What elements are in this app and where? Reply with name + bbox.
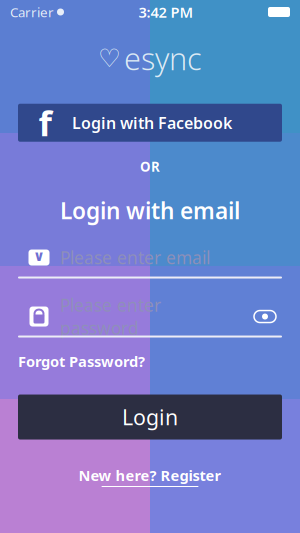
button[interactable]: Forgot Password? [18, 351, 145, 371]
staticText: Login with Facebook [72, 112, 232, 133]
staticText: OR [140, 158, 160, 175]
button[interactable]: Show password [248, 304, 282, 328]
staticText: ♡ [98, 44, 121, 73]
staticText: Forgot Password? [18, 351, 145, 371]
button[interactable]: Login [18, 394, 282, 439]
staticText: Login [122, 403, 178, 431]
staticText: 3:42 PM [138, 2, 193, 22]
staticText: Carrier [10, 3, 54, 21]
staticText: ∨ [33, 248, 45, 264]
staticText: Please enter password [60, 293, 161, 339]
staticText: Login with email [60, 195, 240, 225]
staticText: Please enter email [60, 246, 210, 269]
staticText: f [38, 100, 51, 146]
staticText: esync [124, 38, 202, 79]
button[interactable]: f [18, 104, 282, 142]
staticText: New here? Register [78, 465, 221, 485]
button[interactable]: New here? Register [78, 465, 221, 487]
